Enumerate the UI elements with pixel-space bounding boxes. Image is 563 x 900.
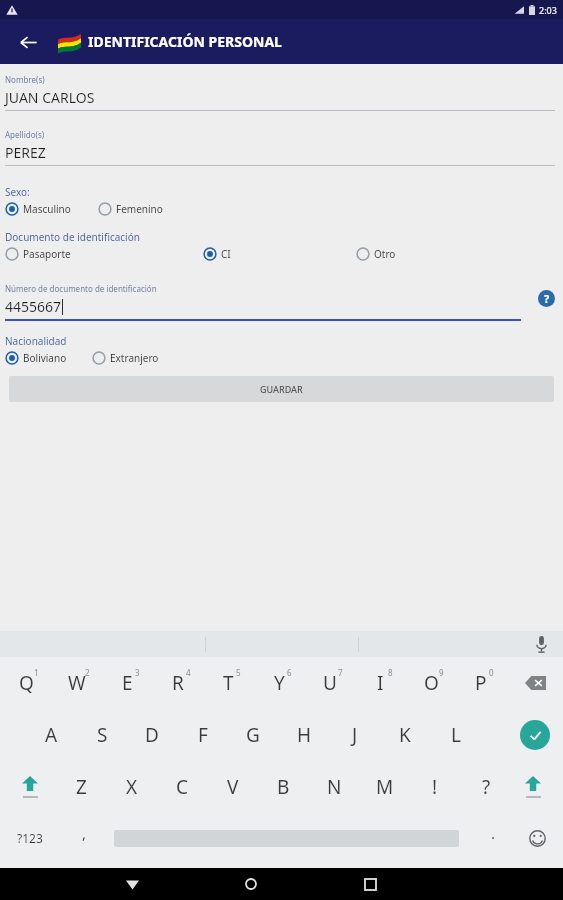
button[interactable]: Boliviano [5, 351, 87, 365]
button[interactable]: E [104, 657, 150, 709]
staticText: G [246, 722, 260, 748]
staticText: S [97, 722, 108, 748]
staticText: 4 [186, 667, 191, 678]
staticText: Z [76, 774, 87, 800]
staticText: ? [544, 291, 550, 306]
staticText: Femenino [116, 202, 163, 216]
staticText: I [377, 670, 384, 696]
staticText: 8 [388, 667, 393, 678]
staticText: R [172, 670, 184, 696]
staticText: 4455667 [5, 297, 62, 316]
staticText: 7 [338, 667, 343, 678]
button[interactable]: Y [256, 657, 302, 709]
staticText: Sexo: [5, 185, 30, 199]
button[interactable]: I [357, 657, 403, 709]
button[interactable]: Ayuda [529, 281, 563, 315]
button[interactable]: J [332, 709, 378, 761]
staticText: IDENTIFICACIÓN PERSONAL [88, 32, 282, 51]
button[interactable]: Shift [8, 765, 52, 809]
button[interactable]: Z [58, 761, 104, 813]
button[interactable]: Back [8, 22, 48, 62]
staticText: PEREZ [5, 143, 46, 162]
staticText: 5 [236, 667, 241, 678]
staticText: O [424, 670, 439, 696]
button[interactable]: V [210, 761, 256, 813]
button[interactable]: Voice input [529, 632, 553, 656]
staticText: Q [19, 670, 34, 696]
button[interactable]: N [311, 761, 357, 813]
button[interactable]: F [180, 709, 226, 761]
button[interactable]: G [230, 709, 276, 761]
button[interactable]: P [458, 657, 504, 709]
button[interactable]: Shift [511, 765, 555, 809]
button[interactable]: L [433, 709, 479, 761]
staticText: ?123 [17, 830, 43, 846]
button[interactable]: Home [233, 868, 269, 900]
button[interactable]: GUARDAR [9, 376, 554, 402]
button[interactable]: K [382, 709, 428, 761]
staticText: 2:03 [539, 4, 557, 16]
staticText: GUARDAR [260, 383, 303, 395]
button[interactable]: O [408, 657, 454, 709]
button[interactable]: T [205, 657, 251, 709]
button[interactable]: Pasaporte [5, 247, 198, 261]
staticText: L [451, 722, 461, 748]
button[interactable]: ! [412, 761, 458, 813]
button[interactable]: M [362, 761, 408, 813]
staticText: CI [221, 247, 231, 261]
staticText: 9 [439, 667, 444, 678]
staticText: Número de documento de identificación [5, 283, 157, 294]
button[interactable]: . [477, 817, 509, 859]
button[interactable]: Femenino [98, 202, 163, 216]
button[interactable]: H [281, 709, 327, 761]
button[interactable]: R [155, 657, 201, 709]
staticText: 3 [135, 667, 140, 678]
button[interactable]: S [79, 709, 125, 761]
staticText: . [491, 823, 496, 843]
staticText: H [297, 722, 312, 748]
staticText: F [198, 722, 208, 748]
button[interactable]: Masculino [5, 202, 93, 216]
staticText: W [68, 670, 86, 696]
button[interactable]: B [260, 761, 306, 813]
staticText: K [399, 722, 411, 748]
button[interactable]: C [159, 761, 205, 813]
button[interactable]: W [54, 657, 100, 709]
button[interactable]: Otro [356, 247, 396, 261]
staticText: 0 [489, 667, 494, 678]
button[interactable]: ?123 [6, 817, 54, 859]
button[interactable]: Emoji [519, 820, 555, 856]
button[interactable]: ? [463, 761, 509, 813]
staticText: E [122, 670, 133, 696]
staticText: M [376, 774, 394, 800]
button[interactable]: Enter [515, 715, 555, 755]
button[interactable]: Back [114, 868, 150, 900]
staticText: Y [274, 670, 285, 696]
button[interactable]: U [307, 657, 353, 709]
staticText: Nombre(s) [5, 74, 45, 85]
staticText: P [475, 670, 487, 696]
staticText: X [126, 774, 138, 800]
button[interactable]: Q [3, 657, 49, 709]
button[interactable]: Extranjero [92, 351, 159, 365]
staticText: B [277, 774, 290, 800]
staticText: Pasaporte [23, 247, 71, 261]
button[interactable]: CI [203, 247, 351, 261]
button[interactable]: , [66, 817, 102, 859]
staticText: U [323, 670, 337, 696]
staticText: 1 [34, 667, 39, 678]
staticText: N [327, 774, 342, 800]
staticText: Boliviano [23, 351, 67, 365]
button[interactable]: X [109, 761, 155, 813]
staticText: ? [482, 774, 491, 800]
staticText: C [176, 774, 189, 800]
staticText: D [145, 722, 159, 748]
button[interactable]: Recents [352, 868, 388, 900]
staticText: , [82, 823, 87, 843]
button[interactable]: Backspace [513, 661, 557, 705]
staticText: 2 [85, 667, 90, 678]
button[interactable]: D [129, 709, 175, 761]
staticText: A [45, 722, 58, 748]
button[interactable]: A [28, 709, 74, 761]
